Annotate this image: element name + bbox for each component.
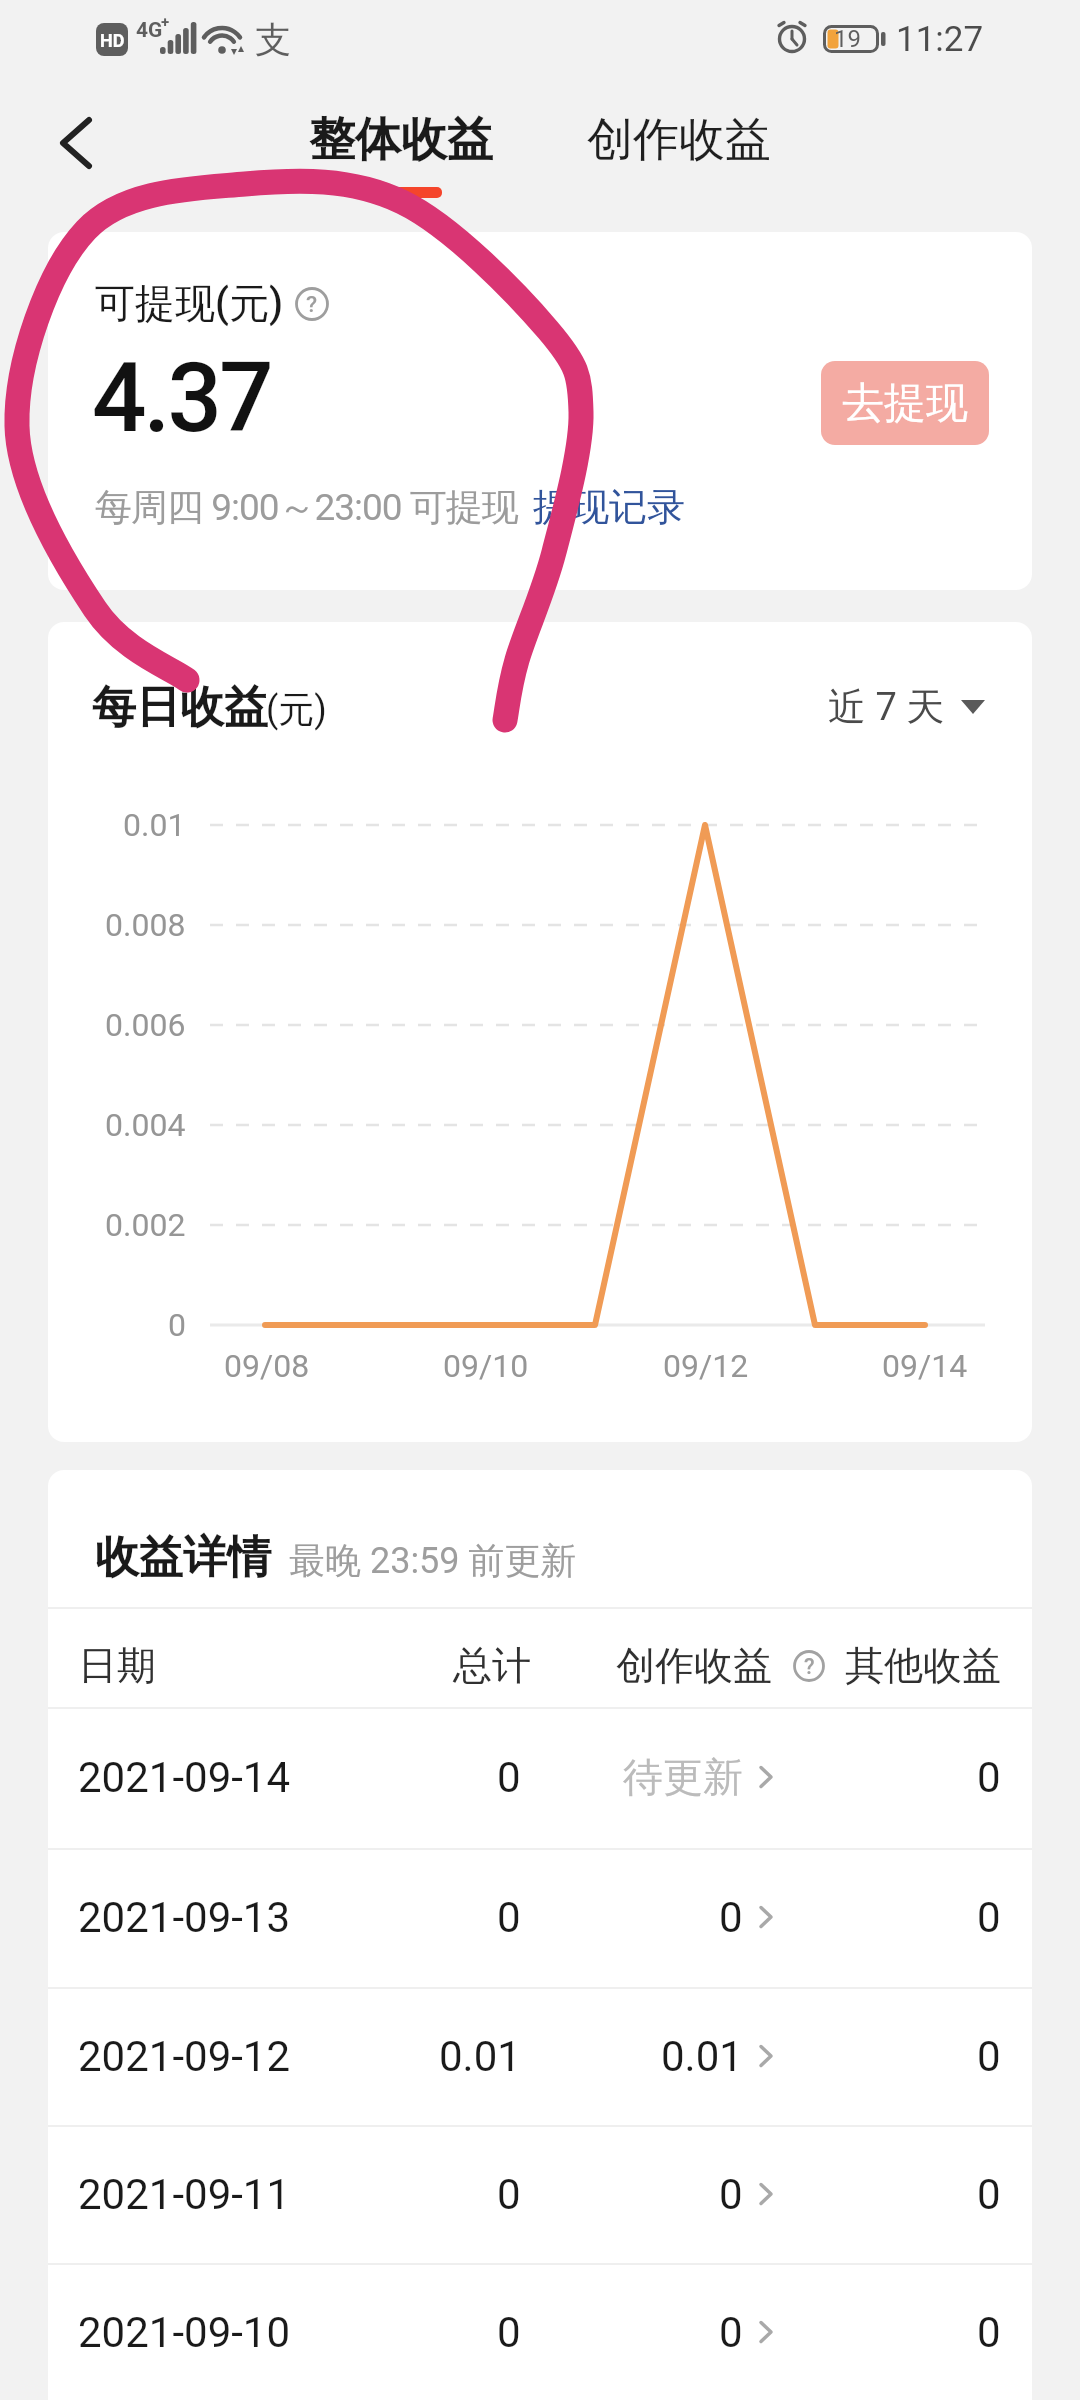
staticText: ? [306,291,318,318]
staticText: 0.008 [105,906,186,944]
staticText: 可提现(元) [95,278,284,328]
staticText: 0 [719,1893,743,1942]
staticText: 2021-09-11 [78,2170,291,2219]
staticText: 其他收益 [845,1641,1001,1690]
staticText: 0 [497,1753,521,1802]
staticText: 每周四 9:00～23:00 可提现 [95,484,518,531]
staticText: 0.01 [123,806,186,844]
staticText: 09/08 [224,1347,310,1385]
button[interactable] [48,1708,1032,1846]
staticText: 09/12 [663,1347,749,1385]
staticText: 0 [497,2170,521,2219]
staticText: 0.01 [439,2032,521,2081]
staticText: 日期 [78,1641,156,1690]
staticText: 待更新 [623,1752,743,1802]
staticText: 11:27 [896,19,984,60]
staticText: 0 [719,2170,743,2219]
staticText: HD [100,30,125,51]
staticText: 创作收益 [587,111,771,169]
button[interactable]: 提现记录 [533,469,1080,545]
button[interactable]: 整体收益 [51,94,751,186]
staticText: 去提现 [842,377,968,430]
button[interactable] [48,1848,1032,1986]
button[interactable]: 去提现 [821,361,989,445]
staticText: 0 [497,1893,521,1942]
staticText: 2021-09-14 [78,1753,291,1802]
staticText: 0 [497,2308,521,2357]
staticText: 0.01 [661,2032,743,2081]
staticText: 09/14 [882,1347,968,1385]
staticText: 09/10 [443,1347,529,1385]
staticText: 近 7 天 [828,683,945,731]
button[interactable] [48,2125,1032,2263]
staticText: 0 [977,1893,1001,1942]
button[interactable] [48,2263,1032,2400]
button[interactable]: ? [789,1646,829,1686]
staticText: 0 [977,1753,1001,1802]
button[interactable]: 创作收益 [329,94,1029,186]
button[interactable] [40,105,110,181]
button[interactable] [830,672,1000,742]
staticText: 19 [834,25,861,53]
staticText: 收益详情 [95,1530,271,1585]
staticText: 0.006 [105,1006,186,1044]
staticText: 0 [977,2032,1001,2081]
button[interactable] [48,1987,1032,2125]
staticText: ? [804,1654,815,1679]
staticText: 最晚 23:59 前更新 [289,1538,577,1583]
staticText: 2021-09-13 [78,1893,291,1942]
staticText: 0.004 [105,1106,186,1144]
staticText: 每日收益 [92,680,268,735]
staticText: 2021-09-12 [78,2032,291,2081]
staticText: (元) [266,687,327,732]
button[interactable]: ? [291,283,333,325]
staticText: + [161,13,170,31]
staticText: 创作收益 [616,1641,772,1690]
staticText: 提现记录 [533,483,685,531]
staticText: 0 [977,2170,1001,2219]
staticText: 总计 [453,1641,531,1690]
staticText: 0.002 [105,1206,186,1244]
staticText: 0 [168,1306,186,1344]
staticText: 支 [255,17,291,62]
staticText: 0 [977,2308,1001,2357]
staticText: 4.37 [92,342,271,455]
staticText: 2021-09-10 [78,2308,291,2357]
staticText: 4G [136,18,163,43]
staticText: 0 [719,2308,743,2357]
staticText: 整体收益 [309,111,493,169]
